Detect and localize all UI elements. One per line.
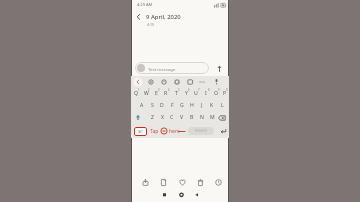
button[interactable]	[136, 14, 141, 20]
staticText: N	[200, 114, 204, 121]
button[interactable]	[135, 114, 141, 121]
button[interactable]: W	[141, 88, 151, 98]
staticText: P	[223, 90, 227, 97]
staticText: 3	[158, 88, 160, 92]
staticText: 5	[178, 88, 180, 92]
button[interactable]	[172, 78, 182, 86]
button[interactable]: E	[151, 88, 161, 98]
button[interactable]	[146, 78, 156, 86]
staticText: Z	[151, 114, 154, 121]
staticText: T	[175, 90, 178, 97]
staticText: 4	[168, 88, 170, 92]
button[interactable]	[217, 65, 222, 73]
staticText: E	[155, 90, 158, 97]
button[interactable]: H	[187, 101, 197, 110]
button[interactable]: V	[177, 113, 187, 122]
button[interactable]	[212, 78, 221, 86]
button[interactable]: Z	[147, 113, 157, 122]
staticText: M	[210, 114, 215, 121]
staticText: R	[164, 90, 168, 97]
staticText: 4:29 AM	[137, 2, 153, 7]
staticText: K	[210, 102, 214, 109]
staticText: 9 April, 2020	[146, 13, 181, 21]
button[interactable]: Q	[131, 88, 141, 98]
staticText: Tap	[150, 128, 159, 135]
button[interactable]: K	[207, 101, 217, 110]
button[interactable]	[220, 128, 227, 135]
staticText: H	[190, 102, 194, 109]
button[interactable]: I	[201, 88, 211, 98]
staticText: 1	[138, 88, 140, 92]
staticText: B	[190, 114, 194, 121]
button[interactable]: Y	[181, 88, 191, 98]
button[interactable]	[197, 78, 207, 86]
staticText: 9	[218, 88, 220, 92]
button[interactable]	[160, 179, 167, 186]
button[interactable]: A	[137, 101, 147, 110]
staticText: Text message	[148, 66, 176, 72]
staticText: 2	[148, 88, 150, 92]
button[interactable]: ENGLISH	[188, 127, 214, 135]
button[interactable]	[159, 78, 169, 86]
button[interactable]	[176, 190, 187, 201]
staticText: X	[161, 114, 164, 121]
staticText: W	[144, 90, 149, 97]
staticText: U	[194, 90, 198, 97]
button[interactable]: M	[207, 113, 217, 122]
button[interactable]: S	[147, 101, 157, 110]
button[interactable]	[142, 179, 149, 186]
staticText: I	[205, 90, 207, 97]
button[interactable]: B	[187, 113, 197, 122]
button[interactable]: T	[171, 88, 181, 98]
staticText: !#1	[138, 130, 143, 134]
button[interactable]	[133, 78, 143, 86]
button[interactable]: F	[167, 101, 177, 110]
button[interactable]: X	[157, 113, 167, 122]
button[interactable]	[197, 179, 204, 186]
button[interactable]	[192, 190, 203, 201]
staticText: 7	[198, 88, 200, 92]
staticText: G	[180, 102, 184, 109]
button[interactable]: J	[197, 101, 207, 110]
button[interactable]: G	[177, 101, 187, 110]
button[interactable]: !#1	[134, 127, 147, 136]
button[interactable]	[218, 115, 226, 121]
staticText: V	[180, 114, 184, 121]
button[interactable]: L	[217, 101, 227, 110]
button[interactable]	[215, 179, 222, 186]
button[interactable]: D	[157, 101, 167, 110]
staticText: A	[140, 102, 144, 109]
staticText: D	[160, 102, 164, 109]
button[interactable]: P	[221, 88, 229, 98]
button[interactable]: N	[197, 113, 207, 122]
staticText: here	[169, 128, 180, 135]
staticText: F	[171, 102, 174, 109]
button[interactable]	[159, 190, 170, 201]
staticText: J	[201, 102, 203, 109]
staticText: L	[221, 102, 224, 109]
staticText: Y	[185, 90, 188, 97]
staticText: 8	[208, 88, 210, 92]
staticText: O	[214, 90, 218, 97]
button[interactable]: Text message	[135, 62, 209, 74]
staticText: S	[151, 102, 154, 109]
button[interactable]	[185, 78, 195, 86]
staticText: Q	[134, 90, 138, 97]
staticText: 0	[226, 88, 228, 92]
button[interactable]	[179, 179, 186, 186]
button[interactable]: R	[161, 88, 171, 98]
staticText: 4:19	[147, 22, 155, 27]
button[interactable]: C	[167, 113, 177, 122]
staticText: C	[170, 114, 174, 121]
staticText: 6	[188, 88, 190, 92]
button[interactable]: O	[211, 88, 221, 98]
staticText: ENGLISH	[195, 129, 207, 133]
button[interactable]: U	[191, 88, 201, 98]
